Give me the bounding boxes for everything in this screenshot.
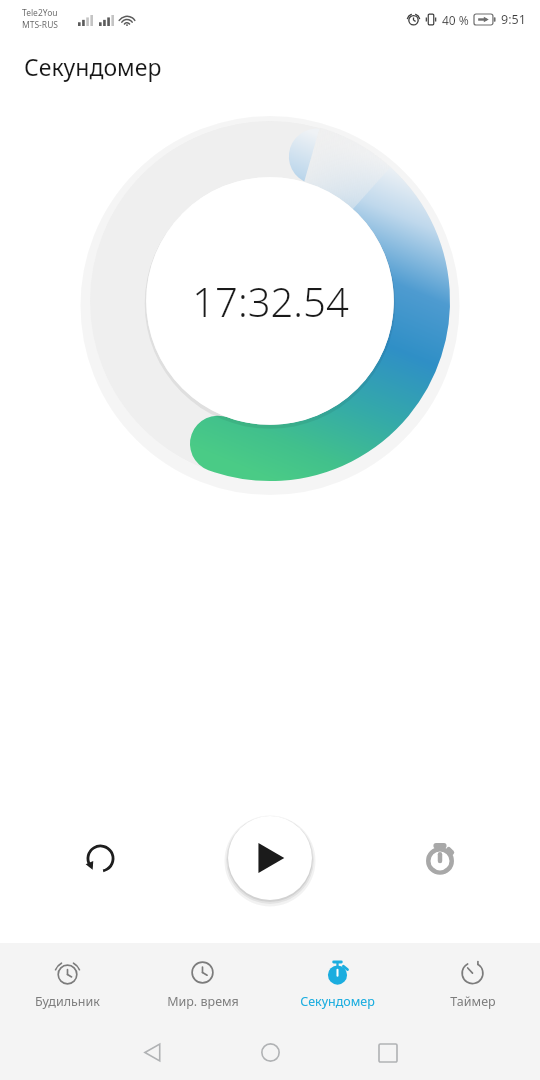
- staticText: 40 %: [442, 12, 469, 28]
- button[interactable]: Назад: [115, 1025, 189, 1080]
- button[interactable]: Секундомер: [270, 953, 405, 1016]
- button[interactable]: Круг: [414, 832, 466, 884]
- button[interactable]: Таймер: [405, 953, 540, 1016]
- button[interactable]: Сбросить: [74, 832, 126, 884]
- staticText: Tele2You: [22, 7, 58, 19]
- staticText: Мир. время: [167, 993, 239, 1010]
- button[interactable]: Недавние приложения: [351, 1025, 425, 1080]
- staticText: Таймер: [450, 993, 496, 1010]
- staticText: Будильник: [35, 993, 100, 1010]
- button[interactable]: Мир. время: [135, 953, 270, 1016]
- button[interactable]: Запустить: [228, 816, 312, 900]
- staticText: 9:51: [501, 11, 526, 28]
- staticText: 17:32.54: [192, 274, 349, 328]
- button[interactable]: Главный экран: [233, 1025, 307, 1080]
- staticText: Секундомер: [300, 993, 375, 1010]
- staticText: Секундомер: [24, 51, 162, 82]
- staticText: MTS-RUS: [22, 19, 59, 31]
- button[interactable]: Будильник: [0, 953, 135, 1016]
